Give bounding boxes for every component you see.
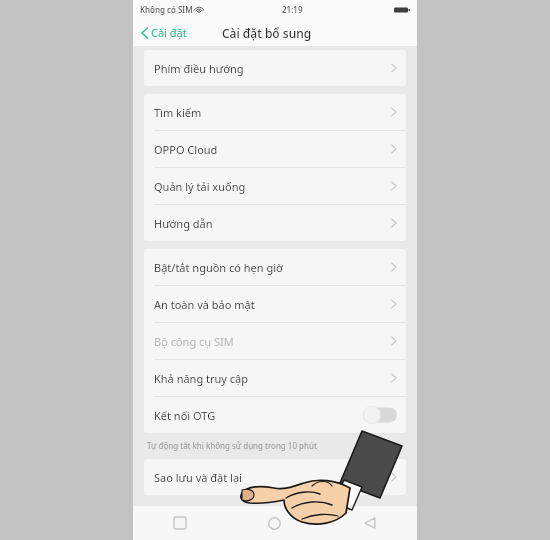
- staticText: Quản lý tải xuống: [154, 179, 246, 194]
- staticText: An toàn và bảo mật: [154, 297, 255, 312]
- staticText: Hướng dẫn: [154, 216, 213, 231]
- button[interactable]: An toàn và bảo mật: [144, 286, 406, 322]
- button[interactable]: Phím điều hướng: [144, 50, 406, 86]
- staticText: Bật/tắt nguồn có hẹn giờ: [154, 260, 283, 275]
- staticText: Cài đặt bổ sung: [222, 25, 312, 41]
- staticText: 21:19: [282, 4, 303, 15]
- button[interactable]: Back: [322, 506, 417, 540]
- staticText: Bộ công cụ SIM: [154, 334, 234, 349]
- button[interactable]: OPPO Cloud: [144, 131, 406, 167]
- button[interactable]: Kết nối OTG: [144, 397, 406, 433]
- staticText: Không có SIM: [140, 4, 193, 15]
- staticText: Cài đặt: [151, 25, 187, 40]
- button[interactable]: Tìm kiếm: [144, 94, 406, 130]
- button[interactable]: Sao lưu và đặt lại: [144, 459, 406, 495]
- staticText: Tìm kiếm: [154, 105, 202, 120]
- button[interactable]: Bật/tắt nguồn có hẹn giờ: [144, 249, 406, 285]
- staticText: OPPO Cloud: [154, 142, 218, 157]
- button[interactable]: Hướng dẫn: [144, 205, 406, 241]
- button[interactable]: Khả năng truy cập: [144, 360, 406, 396]
- button[interactable]: Quản lý tải xuống: [144, 168, 406, 204]
- button[interactable]: Bật tắt Kết nối OTG: [363, 406, 397, 424]
- button[interactable]: Cài đặt: [133, 22, 195, 43]
- button[interactable]: Bộ công cụ SIM: [144, 323, 406, 359]
- staticText: Phím điều hướng: [154, 61, 244, 76]
- button[interactable]: Recents: [133, 506, 227, 540]
- staticText: Khả năng truy cập: [154, 371, 249, 386]
- staticText: Tự động tắt khi không sử dụng trong 10 p…: [147, 440, 317, 451]
- staticText: Kết nối OTG: [154, 408, 216, 423]
- button[interactable]: Home: [227, 506, 322, 540]
- staticText: Sao lưu và đặt lại: [154, 470, 242, 485]
